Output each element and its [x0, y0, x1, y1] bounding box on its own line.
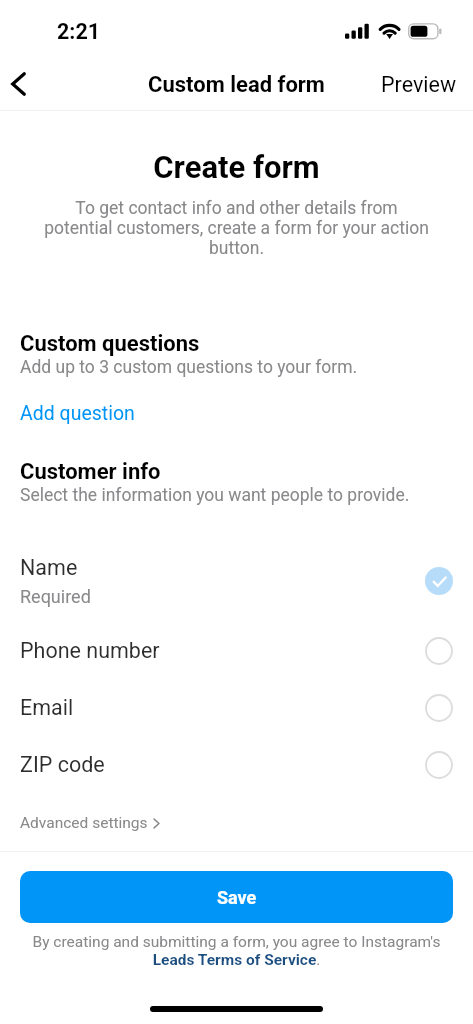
staticText: Name: [20, 555, 78, 580]
staticText: Add up to 3 custom questions to your for…: [20, 357, 358, 378]
staticText: To get contact info and other details fr…: [41, 198, 432, 258]
staticText: Advanced settings: [20, 814, 148, 832]
button[interactable]: Back: [0, 60, 44, 108]
staticText: Select the information you want people t…: [20, 485, 410, 506]
button[interactable]: ZIP code: [0, 736, 473, 793]
staticText: ZIP code: [20, 752, 105, 777]
staticText: Save: [217, 887, 257, 908]
button[interactable]: Phone number: [0, 622, 473, 679]
button[interactable]: Advanced settings: [12, 808, 168, 838]
staticText: Phone number: [20, 638, 160, 663]
button[interactable]: Preview: [373, 62, 465, 107]
staticText: 2:21: [57, 19, 101, 44]
staticText: Create form: [0, 149, 473, 185]
staticText: Preview: [381, 72, 457, 97]
staticText: Customer info: [20, 459, 161, 485]
button[interactable]: Save: [20, 871, 453, 923]
button[interactable]: Add question: [12, 397, 143, 430]
button[interactable]: Name: [0, 542, 473, 620]
staticText: Required: [20, 586, 91, 607]
staticText: By creating and submitting a form, you a…: [20, 933, 453, 969]
button[interactable]: Email: [0, 679, 473, 736]
staticText: Add question: [20, 402, 135, 425]
staticText: Custom lead form: [0, 72, 473, 98]
staticText: Email: [20, 695, 74, 720]
staticText: Custom questions: [20, 331, 200, 357]
